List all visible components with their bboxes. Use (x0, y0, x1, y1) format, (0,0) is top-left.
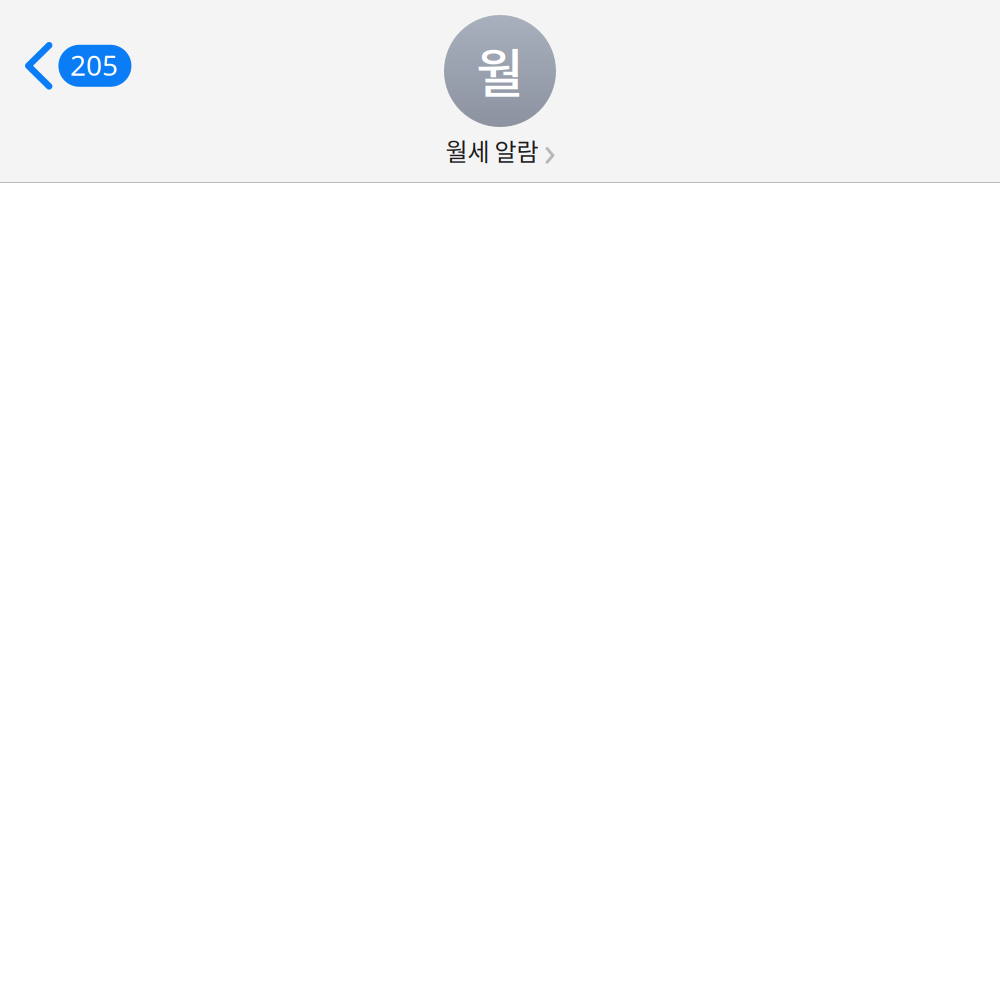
staticText: 205 (70, 46, 118, 83)
staticText: 월세 알람 (446, 133, 539, 168)
staticText: 월 (476, 32, 524, 108)
button[interactable]: Back (0, 0, 131, 90)
button[interactable]: 월 (444, 0, 556, 172)
